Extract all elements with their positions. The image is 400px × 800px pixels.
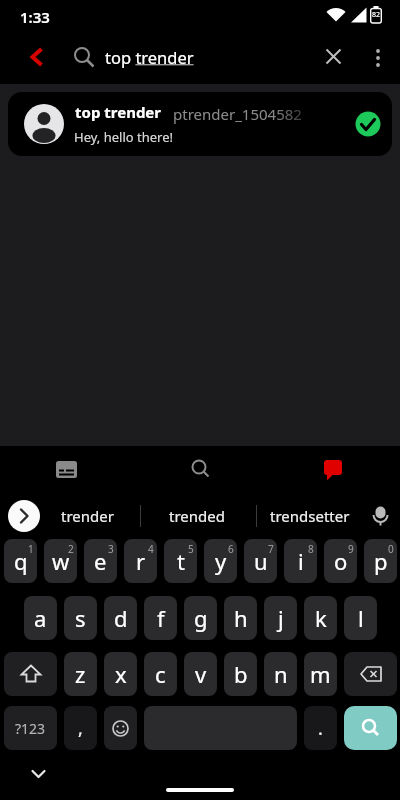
staticText: , [78, 716, 83, 741]
staticText: trended [169, 506, 225, 526]
staticText: e [94, 546, 107, 576]
staticText: 4 [148, 542, 154, 556]
staticText: a [34, 603, 47, 633]
staticText: d [114, 603, 128, 633]
staticText: 1:33 [20, 7, 50, 27]
staticText: v [195, 659, 207, 689]
staticText: y [215, 546, 227, 576]
staticText: t [177, 546, 185, 576]
staticText: c [155, 659, 166, 689]
staticText: x [115, 659, 127, 689]
staticText: k [315, 603, 327, 633]
staticText: 5 [188, 542, 194, 556]
staticText: . [318, 716, 323, 741]
staticText: 82 [372, 10, 381, 20]
staticText: top trender [105, 46, 194, 68]
staticText: Hey, hello there! [74, 128, 173, 146]
staticText: u [254, 546, 268, 576]
staticText: 0 [388, 542, 394, 556]
staticText: 9 [348, 542, 354, 556]
staticText: f [157, 603, 165, 633]
staticText: i [298, 546, 304, 576]
staticText: ptrender_1504582 [173, 104, 302, 124]
staticText: top trender [75, 102, 162, 122]
staticText: s [75, 603, 86, 633]
staticText: g [194, 603, 208, 633]
staticText: q [14, 546, 28, 576]
staticText: m [310, 659, 331, 689]
staticText: w [52, 546, 70, 576]
staticText: trender [61, 506, 114, 526]
staticText: 6 [228, 542, 234, 556]
staticText: j [278, 603, 284, 633]
staticText: o [334, 546, 348, 576]
staticText: 3 [108, 542, 114, 556]
staticText: l [358, 603, 364, 633]
staticText: n [274, 659, 288, 689]
staticText: r [136, 546, 146, 576]
staticText: h [234, 603, 248, 633]
staticText: 8 [308, 542, 314, 556]
staticText: 1 [28, 542, 34, 556]
staticText: z [75, 659, 86, 689]
staticText: ?123 [15, 719, 46, 738]
staticText: 2 [68, 542, 74, 556]
staticText: 7 [268, 542, 274, 556]
staticText: b [234, 659, 248, 689]
staticText: p [374, 546, 388, 576]
staticText: trendsetter [270, 506, 350, 526]
